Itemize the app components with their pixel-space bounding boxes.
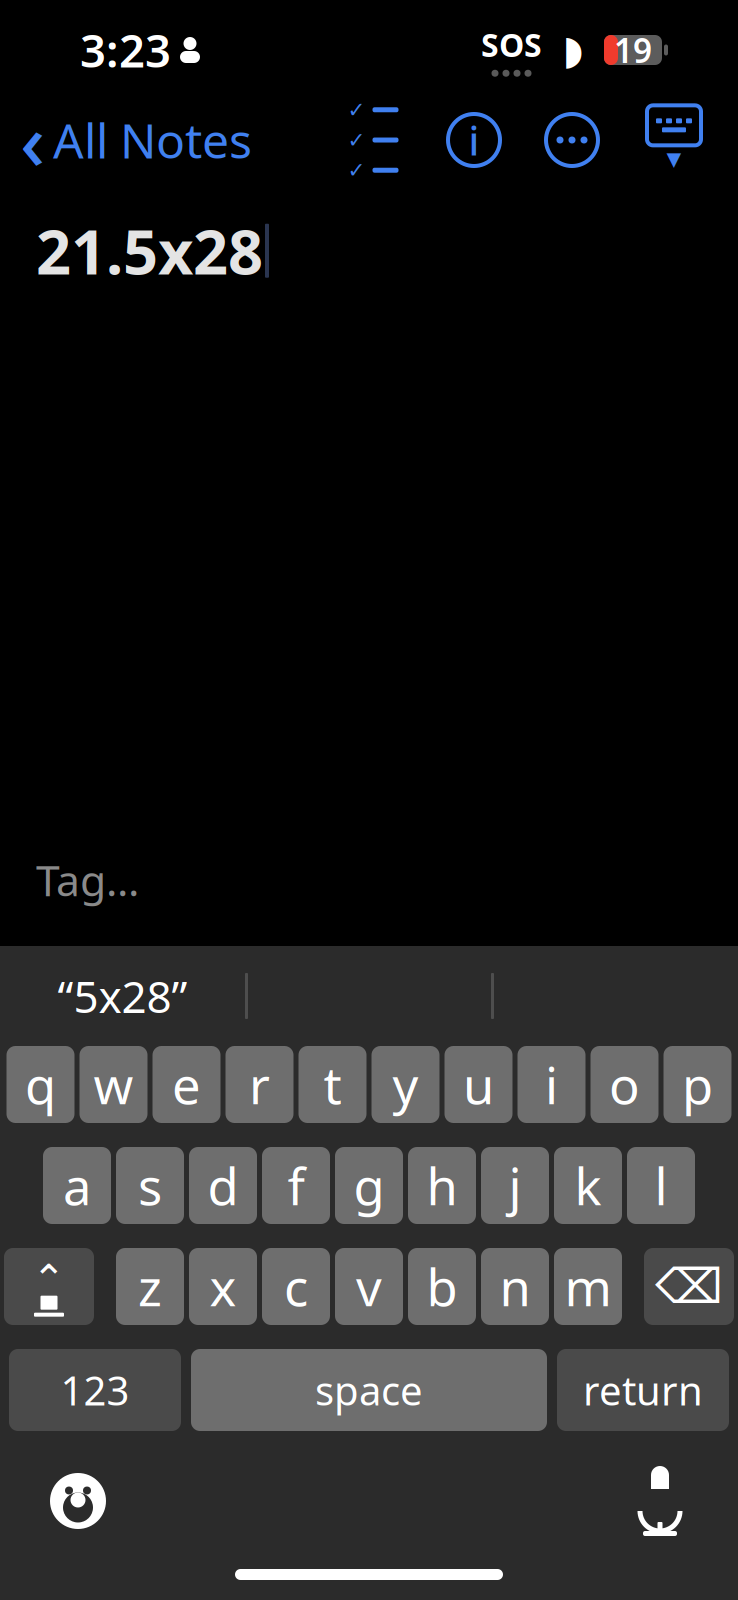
staticText: e [172, 1051, 201, 1118]
staticText: 19 [614, 28, 652, 72]
staticText: Tag... [36, 851, 139, 908]
button[interactable]: q [6, 1046, 74, 1123]
button[interactable]: Info [448, 114, 500, 166]
staticText: k [574, 1152, 601, 1219]
staticText: l [654, 1152, 667, 1219]
staticText: ◗ [562, 27, 583, 73]
staticText: a [63, 1152, 91, 1219]
button[interactable]: r [225, 1046, 293, 1123]
staticText: ⌃ [32, 1256, 66, 1302]
button[interactable]: k [554, 1147, 622, 1224]
button[interactable]: space [191, 1349, 547, 1431]
staticText: p [682, 1051, 713, 1118]
button[interactable]: z [116, 1248, 184, 1325]
button[interactable]: g [335, 1147, 403, 1224]
button[interactable]: x [189, 1248, 257, 1325]
staticText: 3:23 [80, 20, 171, 80]
button[interactable]: return [557, 1349, 729, 1431]
button[interactable]: d [189, 1147, 257, 1224]
staticText: z [138, 1253, 162, 1320]
staticText: i [468, 113, 479, 166]
button[interactable]: 123 [9, 1349, 181, 1431]
staticText: ▾ [666, 141, 681, 175]
staticText: ✓ [347, 98, 365, 122]
staticText: r [249, 1051, 270, 1118]
staticText: ⌫ [655, 1259, 723, 1314]
staticText: g [353, 1152, 384, 1219]
staticText: x [209, 1253, 236, 1320]
staticText: s [138, 1152, 162, 1219]
staticText: q [25, 1051, 56, 1118]
button[interactable]: More [546, 114, 598, 166]
staticText: o [609, 1051, 640, 1118]
button[interactable]: v [335, 1248, 403, 1325]
button[interactable]: s [116, 1147, 184, 1224]
button[interactable]: Delete [644, 1248, 734, 1325]
button[interactable]: o [590, 1046, 658, 1123]
staticText: b [426, 1253, 457, 1320]
staticText: ✓ [347, 128, 365, 152]
staticText: f [287, 1152, 304, 1219]
button[interactable]: p [663, 1046, 731, 1123]
staticText: u [463, 1051, 494, 1118]
button[interactable]: e [152, 1046, 220, 1123]
button[interactable]: u [444, 1046, 512, 1123]
button[interactable]: Shift [4, 1248, 94, 1325]
staticText: m [564, 1253, 611, 1320]
button[interactable]: h [408, 1147, 476, 1224]
staticText: c [284, 1253, 308, 1320]
button[interactable]: ‹ [0, 83, 252, 197]
staticText: t [323, 1051, 341, 1118]
staticText: ‹ [20, 89, 45, 191]
staticText: SOS [481, 23, 542, 66]
staticText: w [93, 1051, 133, 1118]
button[interactable]: t [298, 1046, 366, 1123]
staticText: n [499, 1253, 530, 1320]
staticText: space [315, 1363, 423, 1416]
staticText: All Notes [53, 108, 252, 172]
button[interactable]: f [262, 1147, 330, 1224]
button[interactable]: i [517, 1046, 585, 1123]
button[interactable]: y [371, 1046, 439, 1123]
button[interactable]: w [79, 1046, 147, 1123]
button[interactable]: “5x28” [0, 961, 245, 1031]
staticText: 21.5x28 [36, 210, 263, 291]
staticText: “5x28” [57, 967, 187, 1025]
staticText: return [583, 1363, 703, 1416]
button[interactable]: a [43, 1147, 111, 1224]
staticText: v [356, 1253, 382, 1320]
staticText: 123 [60, 1363, 129, 1416]
staticText: d [207, 1152, 238, 1219]
button[interactable]: b [408, 1248, 476, 1325]
button[interactable]: l [627, 1147, 695, 1224]
button[interactable]: Dictate [620, 1461, 700, 1541]
staticText: i [545, 1051, 558, 1118]
button[interactable]: n [481, 1248, 549, 1325]
button[interactable]: c [262, 1248, 330, 1325]
button[interactable]: Hide Keyboard [644, 109, 704, 171]
button[interactable]: Emoji [38, 1461, 118, 1541]
button[interactable]: j [481, 1147, 549, 1224]
staticText: ✓ [347, 158, 365, 182]
button[interactable]: m [554, 1248, 622, 1325]
staticText: j [508, 1152, 521, 1219]
staticText: y [392, 1051, 418, 1118]
staticText: h [426, 1152, 457, 1219]
button[interactable]: Tag... [36, 843, 139, 916]
button[interactable]: Checklist [336, 109, 410, 171]
